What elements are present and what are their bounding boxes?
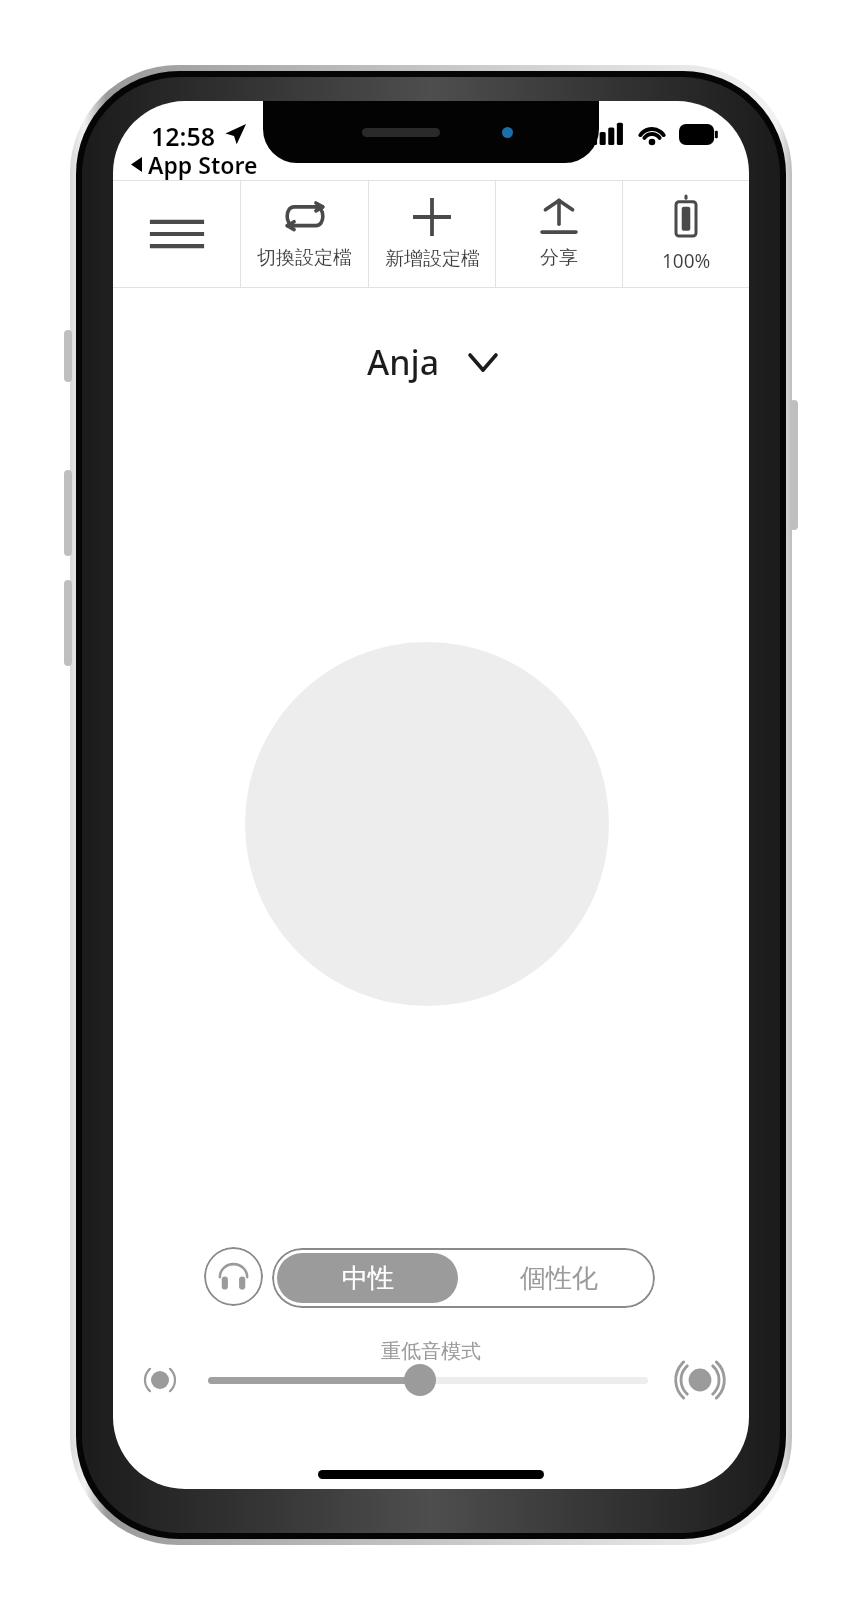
staticText: 分享	[540, 246, 578, 270]
button[interactable]: 分享	[496, 180, 622, 288]
button[interactable]: 切換設定檔	[241, 180, 368, 288]
staticText: Anja	[367, 339, 440, 385]
button[interactable]: App Store	[125, 147, 264, 182]
button[interactable]: 個性化	[463, 1248, 655, 1308]
staticText: 切換設定檔	[257, 246, 352, 270]
button[interactable]: Menu	[113, 180, 240, 288]
button[interactable]: Bass level	[208, 1352, 648, 1408]
button[interactable]: Headphones	[204, 1247, 263, 1306]
staticText: 新增設定檔	[385, 247, 480, 271]
button[interactable]: Anja	[353, 331, 510, 393]
staticText: 個性化	[520, 1262, 598, 1295]
staticText: App Store	[148, 149, 258, 180]
button[interactable]: 中性	[277, 1253, 458, 1303]
staticText: 重低音模式	[113, 1339, 749, 1364]
staticText: 中性	[342, 1262, 394, 1295]
button[interactable]: EQ curve	[245, 642, 609, 1006]
button[interactable]: 100%	[623, 180, 749, 288]
staticText: 12:58	[151, 119, 216, 153]
staticText: 100%	[662, 248, 711, 274]
button[interactable]: 新增設定檔	[369, 180, 495, 288]
